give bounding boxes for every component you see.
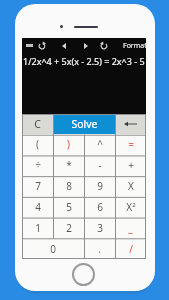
- button[interactable]: 6: [84, 196, 115, 217]
- staticText: _: [128, 221, 133, 235]
- staticText: 4: [35, 200, 41, 214]
- button[interactable]: Backspace: [115, 114, 146, 134]
- button[interactable]: 7: [22, 175, 53, 196]
- button[interactable]: X: [115, 175, 146, 196]
- staticText: *: [66, 158, 72, 172]
- button[interactable]: +: [115, 154, 146, 175]
- staticText: ): [67, 137, 70, 151]
- button[interactable]: Keyboard: [20, 38, 38, 53]
- staticText: 6: [97, 200, 103, 214]
- button[interactable]: 2: [53, 217, 84, 238]
- staticText: ÷: [35, 158, 41, 172]
- button[interactable]: (: [22, 134, 53, 154]
- button[interactable]: 5: [53, 196, 84, 217]
- staticText: =: [128, 137, 134, 151]
- staticText: /: [129, 242, 133, 256]
- button[interactable]: Previous: [55, 38, 73, 53]
- staticText: 1: [35, 221, 41, 235]
- staticText: X²: [126, 200, 136, 214]
- button[interactable]: *: [53, 154, 84, 175]
- staticText: .: [98, 242, 101, 256]
- staticText: 9: [97, 179, 103, 193]
- button[interactable]: C: [22, 114, 53, 134]
- staticText: 0: [50, 242, 56, 256]
- staticText: 8: [66, 179, 72, 193]
- button[interactable]: 0: [22, 238, 84, 259]
- staticText: 2: [66, 221, 72, 235]
- button[interactable]: 1: [22, 217, 53, 238]
- button[interactable]: =: [115, 134, 146, 154]
- staticText: 5: [66, 200, 72, 214]
- button[interactable]: -: [84, 154, 115, 175]
- button[interactable]: 8: [53, 175, 84, 196]
- button[interactable]: Redo: [33, 38, 51, 53]
- staticText: 1/2x^4 + 5x(x - 2.5) = 2x^3 - 5: [23, 55, 145, 67]
- staticText: Format: [123, 41, 147, 51]
- button[interactable]: /: [115, 238, 146, 259]
- button[interactable]: 9: [84, 175, 115, 196]
- button[interactable]: Undo: [95, 38, 113, 53]
- staticText: C: [34, 117, 41, 131]
- button[interactable]: ): [53, 134, 84, 154]
- button[interactable]: X²: [115, 196, 146, 217]
- button[interactable]: .: [84, 238, 115, 259]
- button[interactable]: 4: [22, 196, 53, 217]
- staticText: 3: [97, 221, 103, 235]
- staticText: (: [36, 137, 39, 151]
- button[interactable]: ^: [84, 134, 115, 154]
- staticText: ^: [97, 137, 103, 151]
- staticText: X: [128, 179, 134, 193]
- button[interactable]: ÷: [22, 154, 53, 175]
- staticText: Solve: [71, 117, 98, 131]
- staticText: -: [98, 158, 102, 172]
- button[interactable]: Next: [77, 38, 95, 53]
- button[interactable]: Solve: [53, 114, 115, 134]
- button[interactable]: 3: [84, 217, 115, 238]
- button[interactable]: Format: [121, 38, 149, 53]
- button[interactable]: _: [115, 217, 146, 238]
- staticText: +: [128, 158, 134, 172]
- staticText: 7: [35, 179, 41, 193]
